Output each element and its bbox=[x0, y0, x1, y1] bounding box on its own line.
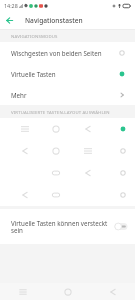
button[interactable] bbox=[0, 118, 135, 140]
staticText: Wischgesten von beiden Seiten bbox=[11, 49, 118, 57]
button[interactable]: Back bbox=[0, 11, 19, 30]
button[interactable]: Home bbox=[45, 283, 90, 300]
staticText: 14:28 bbox=[4, 2, 18, 9]
staticText: VIRTUALISIERTE TASTEN-LAYOUT AUSWÄHLEN bbox=[11, 109, 110, 115]
button[interactable]: Wischgesten von beiden Seiten bbox=[0, 42, 135, 63]
staticText: Virtuelle Tasten können versteckt sein bbox=[11, 219, 109, 235]
button[interactable] bbox=[0, 184, 135, 206]
button[interactable]: Mehr bbox=[0, 84, 135, 105]
staticText: Mehr bbox=[11, 91, 118, 99]
button[interactable] bbox=[0, 140, 135, 162]
button[interactable]: Virtuelle Tasten bbox=[0, 63, 135, 84]
button[interactable]: Toggle hide navigation keys bbox=[114, 222, 128, 231]
staticText: Virtuelle Tasten bbox=[11, 70, 118, 78]
button[interactable]: Virtuelle Tasten können versteckt sein bbox=[0, 209, 135, 244]
staticText: NAVIGATIONSMODUS bbox=[11, 33, 58, 39]
staticText: Navigationstasten bbox=[25, 16, 83, 25]
button[interactable]: Recent apps bbox=[0, 283, 45, 300]
button[interactable] bbox=[0, 162, 135, 184]
